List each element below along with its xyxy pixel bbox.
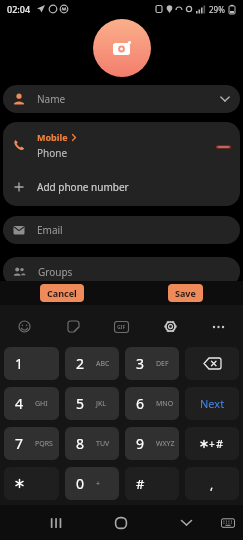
button[interactable]: Email	[3, 216, 240, 244]
staticText: +	[209, 437, 215, 451]
staticText: Add phone number	[37, 180, 129, 194]
button[interactable]: Next	[185, 387, 239, 420]
button[interactable]: 8	[65, 427, 119, 460]
button[interactable]	[202, 310, 235, 343]
staticText: 02:04	[7, 3, 31, 15]
button[interactable]: 3	[125, 347, 179, 380]
staticText: 0	[76, 474, 85, 493]
staticText: Next	[200, 396, 225, 411]
button[interactable]	[101, 505, 141, 540]
button[interactable]: 0	[65, 467, 119, 500]
button[interactable]	[185, 347, 239, 380]
button[interactable]: 6	[125, 387, 179, 420]
button[interactable]: Mobile	[3, 122, 240, 206]
staticText: 5	[76, 394, 85, 413]
button[interactable]: 2	[65, 347, 119, 380]
staticText: GHI	[35, 399, 48, 409]
staticText: Mobile	[37, 131, 68, 143]
staticText: Phone	[37, 146, 68, 160]
button[interactable]: 1	[4, 347, 59, 380]
button[interactable]: +	[185, 427, 239, 460]
button[interactable]: Add phone number	[13, 168, 230, 206]
staticText: JKL	[96, 399, 106, 409]
staticText: ABC	[96, 359, 110, 369]
staticText: #	[216, 436, 224, 451]
staticText: 9	[136, 434, 145, 453]
button[interactable]	[166, 505, 206, 540]
staticText: 4	[15, 394, 24, 413]
button[interactable]: 5	[65, 387, 119, 420]
staticText: GIF	[117, 324, 126, 331]
staticText: PQRS	[35, 439, 53, 449]
staticText: TUV	[96, 439, 110, 449]
staticText: 7	[15, 434, 24, 453]
staticText: MNO	[156, 399, 174, 409]
button[interactable]	[57, 310, 90, 343]
button[interactable]: 4	[4, 387, 59, 420]
button[interactable]: GIF	[105, 310, 138, 343]
staticText: Name	[37, 92, 66, 106]
button[interactable]: #	[125, 467, 179, 500]
staticText: 6	[136, 394, 145, 413]
button[interactable]: ,	[185, 467, 239, 500]
staticText: 2	[76, 354, 85, 373]
button[interactable]: Cancel	[40, 284, 84, 302]
button[interactable]	[8, 310, 41, 343]
button[interactable]	[36, 505, 76, 540]
button[interactable]	[93, 19, 151, 77]
button[interactable]: Name	[3, 85, 240, 113]
button[interactable]: Mobile	[13, 122, 230, 168]
staticText: DEF	[156, 359, 169, 369]
button[interactable]	[4, 467, 59, 500]
button[interactable]	[216, 140, 230, 154]
staticText: WXYZ	[156, 439, 175, 449]
button[interactable]: 7	[4, 427, 59, 460]
button[interactable]: Groups	[3, 257, 240, 286]
staticText: ,	[210, 476, 214, 492]
staticText: Save	[175, 287, 196, 299]
staticText: Cancel	[47, 287, 77, 299]
staticText: Groups	[38, 265, 73, 279]
staticText: #	[136, 475, 145, 493]
staticText: 29%	[209, 4, 225, 15]
staticText: 3	[136, 354, 145, 373]
button[interactable]	[154, 310, 187, 343]
staticText: Email	[37, 223, 63, 237]
staticText: 1	[15, 354, 24, 373]
button[interactable]	[213, 505, 243, 540]
button[interactable]: 9	[125, 427, 179, 460]
staticText: 8	[76, 434, 85, 453]
button[interactable]: Save	[168, 284, 203, 302]
staticText: +	[96, 479, 101, 489]
